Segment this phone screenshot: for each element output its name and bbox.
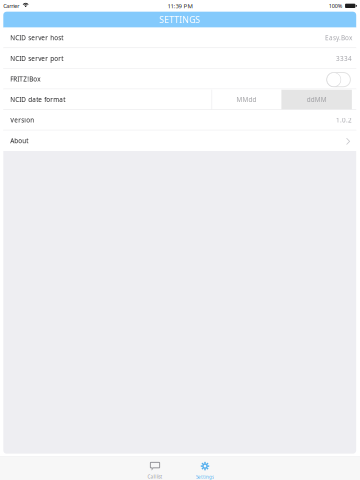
button[interactable]: NCID server port <box>3 48 356 69</box>
staticText: NCID server port <box>10 54 63 63</box>
staticText: Carrier <box>3 2 19 9</box>
staticText: 1.0.2 <box>336 116 352 124</box>
staticText: Settings <box>196 474 214 480</box>
button[interactable]: Version <box>3 110 356 130</box>
staticText: Call list <box>147 474 162 480</box>
staticText: FRITZ!Box <box>10 75 40 83</box>
button[interactable]: MMdd <box>212 90 281 109</box>
staticText: MMdd <box>236 95 256 104</box>
staticText: NCID server host <box>10 34 63 42</box>
staticText: 3334 <box>336 54 352 63</box>
button[interactable]: ddMM <box>281 90 352 109</box>
staticText: About <box>10 136 28 145</box>
staticText: ddMM <box>307 95 327 104</box>
staticText: SETTINGS <box>159 14 200 26</box>
button[interactable]: NCID server host <box>3 28 356 48</box>
staticText: Version <box>10 116 34 124</box>
staticText: Easy.Box <box>325 34 352 42</box>
staticText: 100% <box>329 2 343 9</box>
staticText: NCID date format <box>10 95 65 104</box>
button[interactable]: About <box>3 130 356 151</box>
staticText: 11:39 PM <box>167 2 192 10</box>
button[interactable]: FRITZ!Box <box>327 71 350 87</box>
button[interactable]: Settings <box>180 456 230 480</box>
button[interactable]: Call list <box>130 456 180 480</box>
